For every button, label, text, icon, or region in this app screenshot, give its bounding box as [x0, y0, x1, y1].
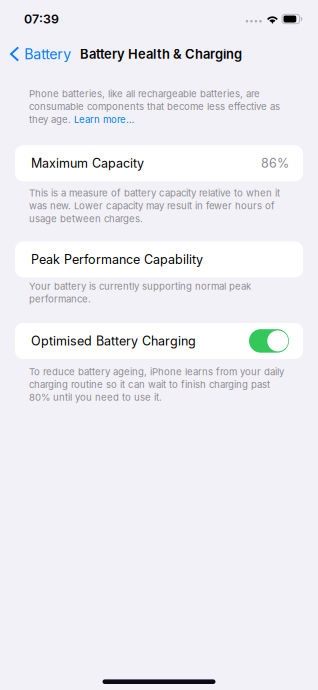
- staticText: Peak Performance Capability: [31, 252, 203, 267]
- button[interactable]: Optimised Battery Charging: [249, 329, 289, 353]
- staticText: 86%: [261, 156, 289, 171]
- staticText: This is a measure of battery capacity re…: [29, 187, 280, 224]
- button[interactable]: Peak Performance Capability: [0, 241, 318, 277]
- button[interactable]: Maximum Capacity: [0, 145, 318, 181]
- button[interactable]: Battery: [0, 39, 79, 69]
- staticText: 07:39: [24, 11, 59, 26]
- staticText: Your battery is currently supporting nor…: [29, 280, 251, 305]
- staticText: Optimised Battery Charging: [31, 333, 196, 348]
- staticText: Battery: [24, 45, 71, 62]
- staticText: Maximum Capacity: [31, 156, 144, 171]
- staticText: Phone batteries, like all rechargeable b…: [29, 88, 280, 125]
- staticText: To reduce battery ageing, iPhone learns …: [29, 366, 284, 403]
- staticText: Battery Health & Charging: [80, 46, 242, 62]
